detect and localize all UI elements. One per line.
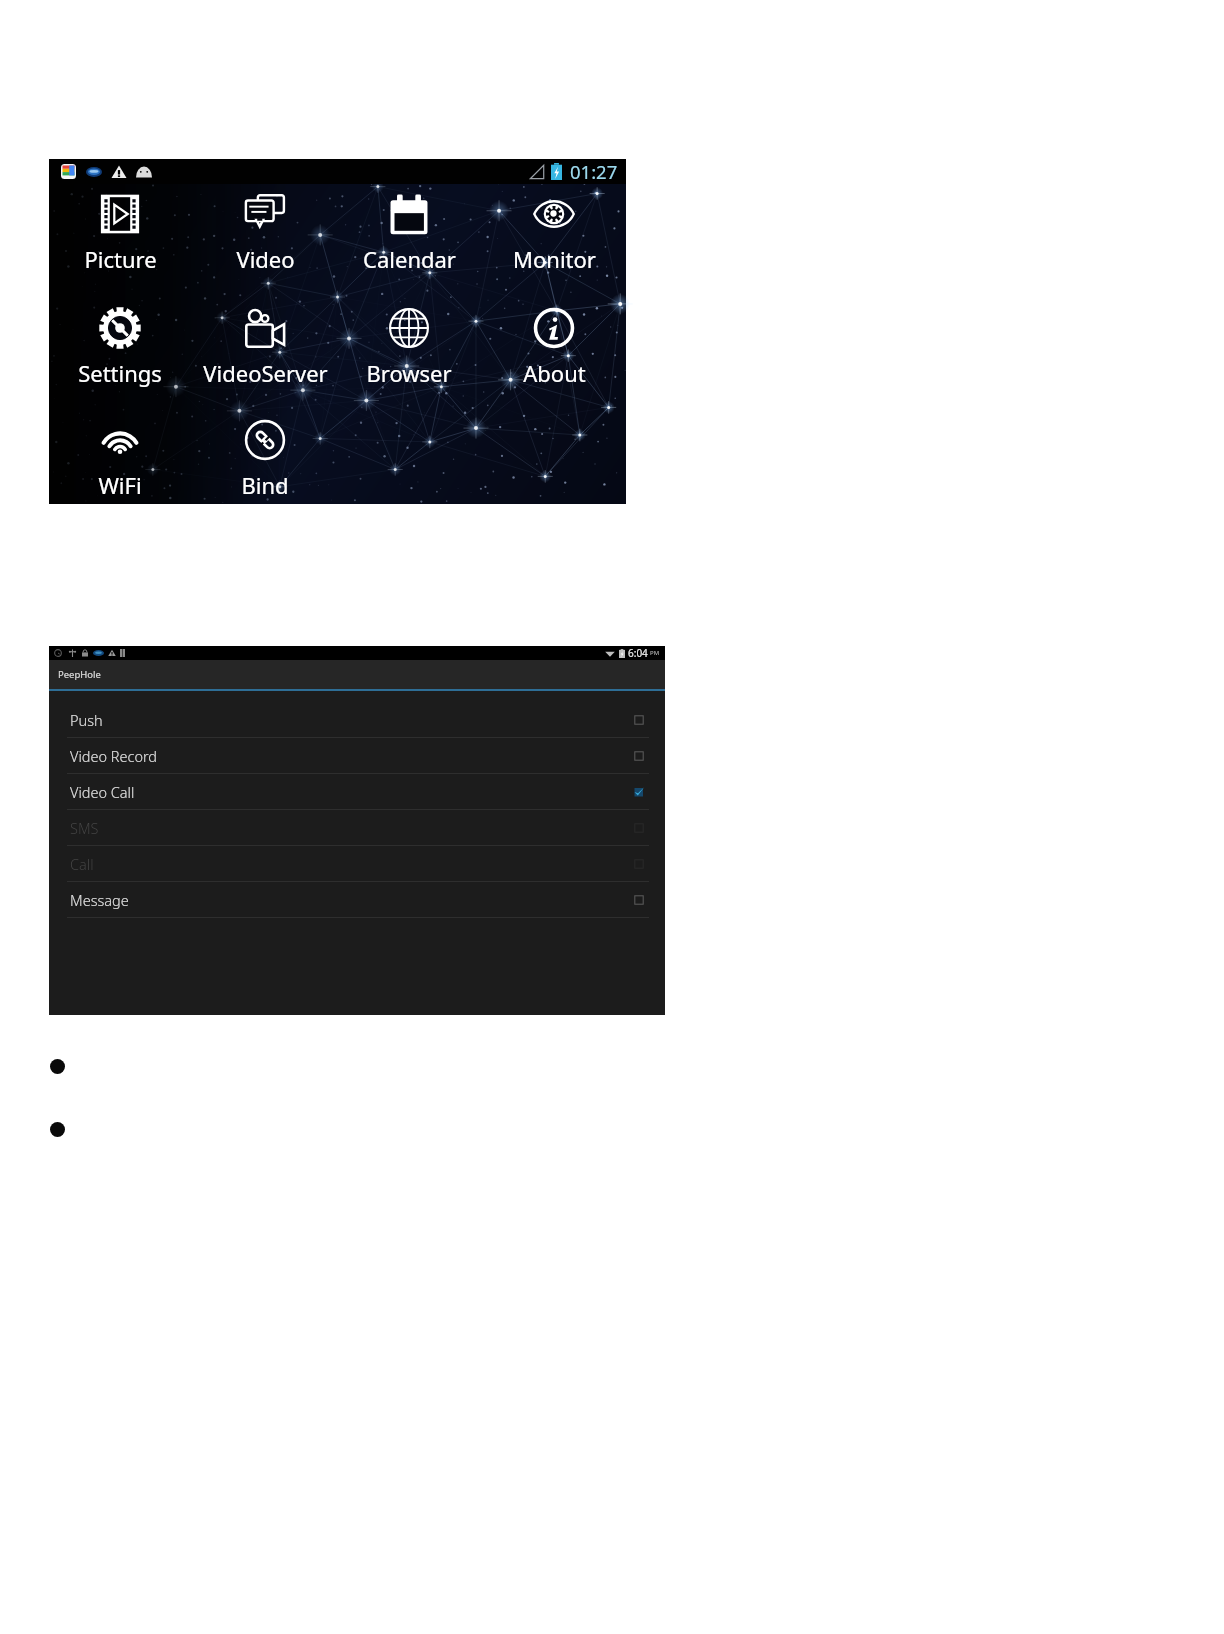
staticText: Picture bbox=[84, 244, 157, 274]
button[interactable]: About bbox=[484, 307, 624, 388]
staticText: Video Call bbox=[70, 782, 135, 802]
staticText: Calendar bbox=[363, 244, 456, 274]
button[interactable]: Video bbox=[195, 193, 335, 274]
button[interactable]: Call bbox=[49, 846, 665, 882]
button[interactable]: Toggle Push bbox=[634, 715, 644, 725]
button[interactable]: Push bbox=[49, 702, 665, 738]
staticText: Push bbox=[70, 710, 103, 730]
staticText: Video Record bbox=[70, 746, 158, 766]
button[interactable]: Toggle Video Record bbox=[634, 751, 644, 761]
staticText: WiFi bbox=[98, 470, 142, 500]
staticText: Browser bbox=[366, 358, 452, 388]
staticText: PM bbox=[650, 649, 660, 657]
staticText: VideoServer bbox=[203, 358, 328, 388]
button[interactable]: VideoServer bbox=[195, 307, 335, 388]
staticText: Monitor bbox=[513, 244, 596, 274]
button[interactable]: Bind bbox=[195, 419, 335, 500]
staticText: Bind bbox=[241, 470, 289, 500]
staticText: SMS bbox=[70, 818, 99, 838]
button[interactable]: Toggle Video Call bbox=[634, 787, 644, 797]
button[interactable]: Toggle Message bbox=[634, 895, 644, 905]
button[interactable]: Browser bbox=[339, 307, 479, 388]
button[interactable]: SMS bbox=[49, 810, 665, 846]
staticText: PeepHole bbox=[58, 668, 101, 681]
button[interactable]: Toggle SMS bbox=[634, 823, 644, 833]
button[interactable]: Picture bbox=[50, 193, 190, 274]
staticText: 01:27 bbox=[570, 159, 618, 184]
button[interactable]: WiFi bbox=[50, 419, 190, 500]
staticText: About bbox=[523, 358, 586, 388]
button[interactable]: Monitor bbox=[484, 193, 624, 274]
button[interactable]: Toggle Call bbox=[634, 859, 644, 869]
button[interactable]: Video Record bbox=[49, 738, 665, 774]
button[interactable]: Calendar bbox=[339, 193, 479, 274]
staticText: Video bbox=[236, 244, 295, 274]
button[interactable]: Settings bbox=[50, 307, 190, 388]
button[interactable]: Message bbox=[49, 882, 665, 918]
staticText: Settings bbox=[78, 358, 162, 388]
button[interactable]: Video Call bbox=[49, 774, 665, 810]
staticText: Call bbox=[70, 854, 94, 874]
staticText: 6:04 bbox=[628, 646, 648, 660]
staticText: Message bbox=[70, 890, 129, 910]
